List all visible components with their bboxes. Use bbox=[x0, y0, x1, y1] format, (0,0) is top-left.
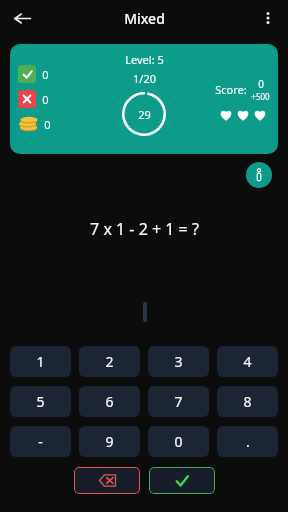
staticText: 4 bbox=[243, 352, 252, 371]
button[interactable]: 0 bbox=[148, 426, 209, 457]
button[interactable]: 6 bbox=[79, 386, 140, 417]
button[interactable]: Submit answer bbox=[149, 467, 215, 494]
button[interactable]: . bbox=[217, 426, 278, 457]
staticText: 8 bbox=[243, 392, 252, 411]
button[interactable]: 1 bbox=[10, 346, 71, 377]
staticText: 5 bbox=[36, 392, 45, 411]
staticText: 0 bbox=[42, 67, 49, 82]
staticText: 1 bbox=[36, 352, 45, 371]
staticText: - bbox=[38, 432, 43, 451]
staticText: 6 bbox=[105, 392, 114, 411]
staticText: 3 bbox=[174, 352, 183, 371]
staticText: 7 x 1 - 2 + 1 = ? bbox=[90, 218, 199, 240]
button[interactable]: 5 bbox=[10, 386, 71, 417]
staticText: 0 bbox=[42, 92, 49, 107]
staticText: Mixed bbox=[124, 9, 165, 28]
staticText: Score: bbox=[215, 82, 247, 97]
button[interactable]: 4 bbox=[217, 346, 278, 377]
staticText: 0 bbox=[174, 432, 183, 451]
button[interactable]: 9 bbox=[79, 426, 140, 457]
button[interactable]: 8 bbox=[217, 386, 278, 417]
button[interactable]: Delete bbox=[74, 467, 140, 494]
button[interactable]: Info bbox=[246, 162, 272, 188]
button[interactable]: 2 bbox=[79, 346, 140, 377]
staticText: 29 bbox=[138, 107, 151, 122]
staticText: 9 bbox=[105, 432, 114, 451]
staticText: 0 bbox=[44, 117, 51, 132]
staticText: Level: 5 bbox=[125, 52, 164, 67]
button[interactable]: - bbox=[10, 426, 71, 457]
staticText: 2 bbox=[105, 352, 114, 371]
button[interactable]: More options bbox=[254, 4, 282, 32]
button[interactable]: 7 bbox=[148, 386, 209, 417]
button[interactable]: 3 bbox=[148, 346, 209, 377]
staticText: +500 bbox=[251, 91, 270, 102]
staticText: . bbox=[246, 432, 250, 451]
button[interactable]: Back bbox=[8, 4, 36, 32]
staticText: 7 bbox=[174, 392, 183, 411]
staticText: 1/20 bbox=[133, 71, 156, 86]
staticText: 0 bbox=[258, 77, 264, 91]
